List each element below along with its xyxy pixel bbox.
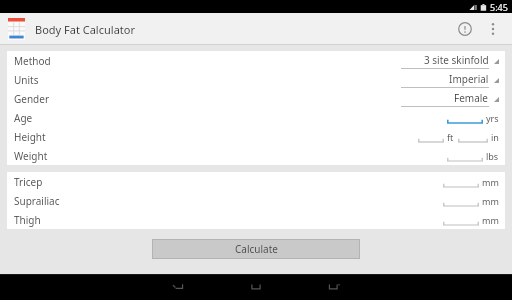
button[interactable]: Weight [7,146,505,165]
staticText: Age [14,111,33,125]
button[interactable]: Thigh [7,210,505,229]
staticText: Calculate [235,242,278,256]
staticText: Imperial [449,72,489,86]
staticText: 3 site skinfold [424,53,489,67]
button[interactable]: Back [152,274,204,300]
button[interactable]: Height [7,127,505,146]
button[interactable]: Calculate [153,240,359,258]
staticText: Body Fat Calculator [35,22,135,37]
button[interactable]: Home [230,274,282,300]
button[interactable]: Recent apps [308,274,360,300]
button[interactable]: Info [450,14,480,44]
staticText: yrs [486,112,499,124]
button[interactable]: Method [7,51,505,70]
staticText: Suprailiac [14,194,60,208]
button[interactable]: Suprailiac [7,191,505,210]
staticText: ft [447,131,454,143]
staticText: Thigh [14,213,41,227]
button[interactable]: Gender [7,89,505,108]
staticText: Tricep [14,175,43,189]
staticText: mm [482,214,499,226]
staticText: Method [14,54,51,68]
staticText: Weight [14,149,48,163]
staticText: lbs [486,150,499,162]
staticText: mm [482,195,499,207]
button[interactable]: Age [7,108,505,127]
staticText: 5:45 [490,1,508,13]
staticText: Female [454,91,489,105]
staticText: in [491,131,499,143]
staticText: Gender [14,92,50,106]
button[interactable]: More options [480,16,506,42]
staticText: Units [14,73,39,87]
button[interactable]: Units [7,70,505,89]
staticText: mm [482,176,499,188]
staticText: Height [14,130,46,144]
button[interactable]: Tricep [7,172,505,191]
